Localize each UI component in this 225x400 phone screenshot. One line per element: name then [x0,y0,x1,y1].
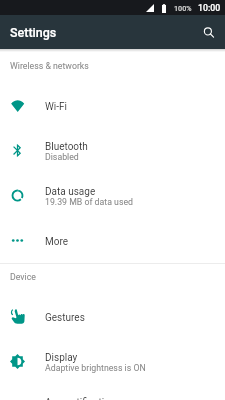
staticText: Adaptive brightness is ON [45,363,146,373]
button[interactable]: Display [0,339,225,384]
staticText: Device [10,272,36,282]
staticText: Data usage [45,186,96,198]
staticText: 100% [174,4,192,12]
staticText: Wireless & networks [10,61,89,71]
button[interactable]: More [0,218,225,263]
button[interactable]: Gestures [0,294,225,339]
button[interactable]: App notifications [0,384,225,400]
staticText: Bluetooth [45,141,88,153]
staticText: Settings [10,25,57,40]
staticText: 19.39 MB of data used [45,197,134,207]
staticText: App notifications [45,397,121,400]
staticText: More [45,236,69,248]
button[interactable]: Bluetooth [0,128,225,173]
button[interactable]: Wi-Fi [0,83,225,128]
button[interactable]: Search [196,20,221,45]
staticText: Wi-Fi [45,101,68,113]
staticText: Gestures [45,312,85,324]
staticText: 10:00 [198,3,221,13]
staticText: Display [45,352,78,364]
button[interactable]: Data usage [0,173,225,218]
staticText: Disabled [45,152,79,162]
